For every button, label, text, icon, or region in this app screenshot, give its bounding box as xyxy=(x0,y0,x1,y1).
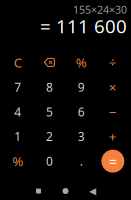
button[interactable]: Home xyxy=(52,182,79,200)
staticText: C xyxy=(14,53,22,71)
staticText: 9 xyxy=(78,79,85,95)
staticText: 155×24×30 xyxy=(73,2,127,17)
button[interactable]: 1 xyxy=(2,124,34,149)
button[interactable]: % xyxy=(2,149,34,173)
button[interactable]: + xyxy=(97,124,129,149)
button[interactable]: Recent apps xyxy=(25,182,52,200)
button[interactable]: 0 xyxy=(34,149,65,173)
button[interactable]: 8 xyxy=(34,75,65,99)
button[interactable]: 5 xyxy=(34,99,65,124)
button[interactable]: % xyxy=(65,50,97,75)
staticText: = xyxy=(109,151,117,171)
button[interactable]: − xyxy=(97,99,129,124)
button[interactable]: . xyxy=(65,149,97,173)
staticText: 8 xyxy=(46,79,53,95)
button[interactable]: 6 xyxy=(65,99,97,124)
button[interactable]: × xyxy=(97,75,129,99)
staticText: + xyxy=(109,128,117,145)
staticText: ◀ xyxy=(89,186,96,196)
button[interactable]: 4 xyxy=(2,99,34,124)
staticText: % xyxy=(12,152,23,170)
button[interactable]: 3 xyxy=(65,124,97,149)
staticText: 7 xyxy=(14,79,21,95)
staticText: 5 xyxy=(46,104,53,120)
button[interactable]: = xyxy=(97,149,129,173)
button[interactable]: Delete xyxy=(34,50,65,75)
staticText: × xyxy=(109,78,117,96)
staticText: − xyxy=(109,103,117,121)
staticText: 0 xyxy=(46,153,53,169)
staticText: 1 xyxy=(14,128,21,144)
staticText: 6 xyxy=(78,104,85,120)
button[interactable]: Back xyxy=(79,182,106,200)
button[interactable]: 9 xyxy=(65,75,97,99)
staticText: 2 xyxy=(46,128,53,144)
button[interactable]: 2 xyxy=(34,124,65,149)
button[interactable]: 7 xyxy=(2,75,34,99)
button[interactable]: C xyxy=(2,50,34,75)
staticText: 3 xyxy=(78,128,85,144)
staticText: 4 xyxy=(14,104,21,120)
staticText: = 111 600 xyxy=(40,14,127,38)
button[interactable]: ÷ xyxy=(97,50,129,75)
staticText: . xyxy=(80,153,83,169)
staticText: ÷ xyxy=(109,53,117,71)
staticText: % xyxy=(76,53,87,71)
